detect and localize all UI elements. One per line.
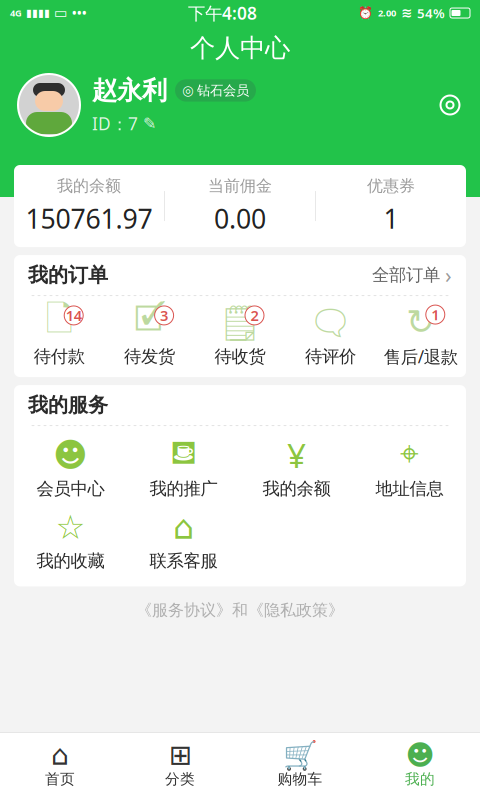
staticText: ••• (72, 5, 87, 21)
button[interactable]: ID：7 (92, 112, 156, 135)
staticText: 我的 (405, 770, 435, 788)
staticText: ⌂ (51, 739, 69, 771)
staticText: ☻ (405, 739, 434, 771)
button[interactable]: 头像 (18, 74, 80, 136)
staticText: 🗒 (218, 303, 262, 343)
button[interactable]: ☻ (360, 737, 480, 794)
staticText: ☆ (55, 508, 85, 546)
staticText: 我的订单 (28, 263, 108, 287)
staticText: 赵永利 (92, 75, 167, 106)
staticText: 个人中心 (190, 32, 290, 63)
staticText: ▭ (54, 5, 68, 21)
staticText: 150761.97 (25, 201, 152, 236)
button[interactable]: 🗒 (195, 306, 285, 367)
staticText: 联系客服 (149, 550, 217, 571)
button[interactable]: 《服务协议》 (136, 600, 232, 620)
staticText: 首页 (45, 770, 75, 788)
staticText: 优惠券 (367, 176, 415, 196)
button[interactable]: 🗹 (104, 306, 195, 367)
staticText: 14 (66, 306, 82, 325)
staticText: 0.00 (214, 201, 266, 236)
staticText: ⊞ (168, 739, 191, 771)
staticText: 我的余额 (262, 478, 330, 499)
staticText: 购物车 (277, 770, 322, 788)
staticText: 我的余额 (57, 176, 121, 196)
button[interactable]: 设置 (438, 93, 462, 117)
staticText: 下午4:08 (188, 1, 257, 24)
staticText: ↻ (406, 302, 435, 342)
staticText: 1 (431, 305, 439, 324)
staticText: 售后/退款 (384, 345, 458, 368)
staticText: ✎ (143, 114, 156, 133)
staticText: ⌖ (400, 439, 419, 471)
staticText: 钻石会员 (197, 82, 249, 99)
staticText: 我的服务 (28, 393, 108, 417)
staticText: 地址信息 (375, 478, 443, 499)
staticText: ID：7 (92, 112, 138, 135)
staticText: 我的推广 (149, 478, 217, 499)
staticText: 我的收藏 (36, 550, 104, 571)
button[interactable]: ¥ (240, 440, 353, 499)
staticText: 1 (383, 201, 398, 236)
staticText: 待付款 (34, 346, 85, 367)
staticText: ⏰ (358, 6, 373, 20)
button[interactable]: 🗋 (14, 306, 104, 367)
staticText: ⛾ (170, 439, 197, 471)
staticText: 待评价 (305, 346, 356, 367)
button[interactable]: 🛒 (240, 737, 360, 794)
button[interactable]: ⌂ (127, 512, 240, 571)
staticText: 《服务协议》 (136, 600, 232, 620)
button[interactable]: 全部订单 (372, 261, 452, 289)
staticText: 🗋 (45, 294, 73, 352)
button[interactable]: ⛾ (127, 440, 240, 499)
staticText: 待收货 (214, 346, 265, 367)
staticText: 4G (10, 7, 22, 19)
staticText: › (445, 261, 452, 289)
staticText: 和 (232, 600, 248, 620)
button[interactable]: ⌂ (0, 737, 120, 794)
staticText: 3 (160, 306, 168, 325)
staticText: 2 (250, 306, 258, 325)
staticText: 🗹 (134, 294, 165, 352)
staticText: 待发货 (124, 346, 175, 367)
button[interactable]: ⌖ (353, 440, 466, 499)
staticText: ▮▮▮▮ (26, 7, 50, 19)
staticText: 分类 (165, 770, 195, 788)
staticText: 当前佣金 (208, 176, 272, 196)
staticText: 54% (417, 4, 445, 22)
staticText: 🛒 (282, 739, 317, 771)
button[interactable]: ⊞ (120, 737, 240, 794)
staticText: ◎ (182, 83, 194, 98)
staticText: 全部订单 (372, 264, 440, 286)
staticText: 《隐私政策》 (248, 600, 344, 620)
staticText: ⌂ (173, 508, 194, 546)
button[interactable]: ☻ (14, 440, 127, 499)
staticText: 2.00 (378, 7, 396, 19)
staticText: 会员中心 (36, 478, 104, 499)
staticText: 🗨 (308, 303, 352, 343)
button[interactable]: 《隐私政策》 (248, 600, 344, 620)
staticText: ☻ (53, 436, 88, 474)
staticText: ≋ (401, 5, 412, 20)
button[interactable]: ☆ (14, 512, 127, 571)
staticText: ¥ (287, 433, 306, 477)
button[interactable]: ↻ (376, 305, 466, 368)
button[interactable]: 🗨 (285, 306, 376, 367)
